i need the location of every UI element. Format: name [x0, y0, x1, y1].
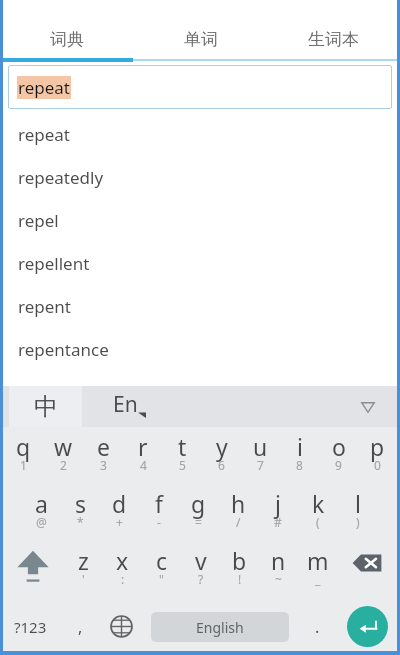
staticText: ~: [275, 571, 282, 587]
button[interactable]: repeatedly: [0, 156, 400, 199]
button[interactable]: e: [83, 427, 123, 484]
button[interactable]: repeat: [8, 65, 392, 109]
staticText: 2: [60, 457, 67, 473]
staticText: repeat: [18, 76, 70, 99]
button[interactable]: repeat: [0, 113, 400, 156]
staticText: 0: [374, 457, 381, 473]
button[interactable]: Hide keyboard: [351, 390, 385, 424]
staticText: q: [16, 431, 31, 462]
staticText: ?: [198, 571, 204, 587]
button[interactable]: Backspace: [337, 541, 397, 598]
staticText: 8: [296, 457, 303, 473]
button[interactable]: repel: [0, 199, 400, 242]
button[interactable]: a: [22, 484, 61, 541]
staticText: +: [116, 514, 123, 530]
button[interactable]: En: [82, 386, 168, 427]
button[interactable]: b: [220, 541, 259, 598]
button[interactable]: i: [280, 427, 319, 484]
button[interactable]: l: [338, 484, 378, 541]
staticText: o: [332, 431, 346, 462]
staticText: :: [121, 571, 125, 587]
staticText: d: [112, 488, 127, 519]
button[interactable]: ,: [60, 598, 100, 655]
staticText: /: [236, 514, 241, 530]
staticText: 7: [257, 457, 264, 473]
staticText: i: [297, 431, 303, 462]
staticText: *: [77, 514, 84, 530]
staticText: =: [195, 514, 202, 530]
staticText: ": [159, 571, 164, 587]
button[interactable]: d: [100, 484, 139, 541]
button[interactable]: Shift: [3, 541, 63, 598]
button[interactable]: s: [61, 484, 100, 541]
button[interactable]: Change language: [100, 598, 143, 655]
button[interactable]: v: [181, 541, 220, 598]
button[interactable]: z: [63, 541, 103, 598]
staticText: 3: [100, 457, 107, 473]
button[interactable]: c: [142, 541, 181, 598]
staticText: z: [78, 545, 89, 576]
staticText: e: [97, 431, 110, 462]
button[interactable]: n: [259, 541, 298, 598]
staticText: En: [113, 390, 138, 419]
staticText: repellent: [18, 252, 90, 275]
staticText: 1: [20, 457, 27, 473]
staticText: 单词: [184, 29, 218, 50]
button[interactable]: k: [298, 484, 338, 541]
staticText: 6: [218, 457, 225, 473]
staticText: m: [307, 545, 329, 576]
button[interactable]: p: [358, 427, 397, 484]
staticText: ): [356, 514, 360, 530]
staticText: p: [370, 431, 385, 462]
staticText: repent: [18, 295, 71, 318]
button[interactable]: 生词本: [267, 0, 400, 61]
button[interactable]: Enter: [347, 606, 388, 647]
button[interactable]: r: [123, 427, 163, 484]
staticText: repeat: [18, 123, 70, 146]
button[interactable]: q: [3, 427, 43, 484]
button[interactable]: o: [319, 427, 358, 484]
button[interactable]: t: [163, 427, 202, 484]
staticText: repel: [18, 209, 59, 232]
staticText: _: [315, 571, 321, 587]
staticText: ?123: [14, 617, 47, 637]
button[interactable]: repent: [0, 285, 400, 328]
button[interactable]: u: [241, 427, 280, 484]
staticText: 中: [34, 392, 58, 422]
button[interactable]: f: [139, 484, 178, 541]
staticText: 4: [140, 457, 147, 473]
button[interactable]: ?123: [0, 598, 60, 655]
button[interactable]: English: [151, 612, 289, 642]
staticText: repeatedly: [18, 166, 104, 189]
button[interactable]: w: [43, 427, 83, 484]
staticText: n: [271, 545, 286, 576]
button[interactable]: x: [103, 541, 142, 598]
button[interactable]: .: [289, 598, 345, 655]
button[interactable]: 词典: [0, 0, 134, 61]
staticText: 9: [335, 457, 342, 473]
button[interactable]: repentance: [0, 328, 400, 371]
staticText: a: [35, 488, 48, 519]
button[interactable]: h: [218, 484, 258, 541]
button[interactable]: y: [202, 427, 241, 484]
staticText: h: [231, 488, 246, 519]
button[interactable]: j: [258, 484, 298, 541]
staticText: !: [238, 571, 242, 587]
staticText: repentance: [18, 338, 109, 361]
button[interactable]: m: [298, 541, 337, 598]
staticText: 词典: [50, 29, 84, 50]
staticText: y: [216, 431, 228, 462]
staticText: .: [315, 616, 320, 638]
staticText: (: [316, 514, 320, 530]
staticText: r: [138, 431, 148, 462]
button[interactable]: 中: [9, 386, 82, 427]
staticText: b: [232, 545, 247, 576]
staticText: g: [191, 488, 206, 519]
button[interactable]: repellent: [0, 242, 400, 285]
staticText: f: [155, 488, 163, 519]
staticText: s: [75, 488, 87, 519]
button[interactable]: 单词: [134, 0, 267, 61]
staticText: w: [54, 431, 73, 462]
staticText: ,: [78, 616, 83, 638]
button[interactable]: g: [178, 484, 218, 541]
